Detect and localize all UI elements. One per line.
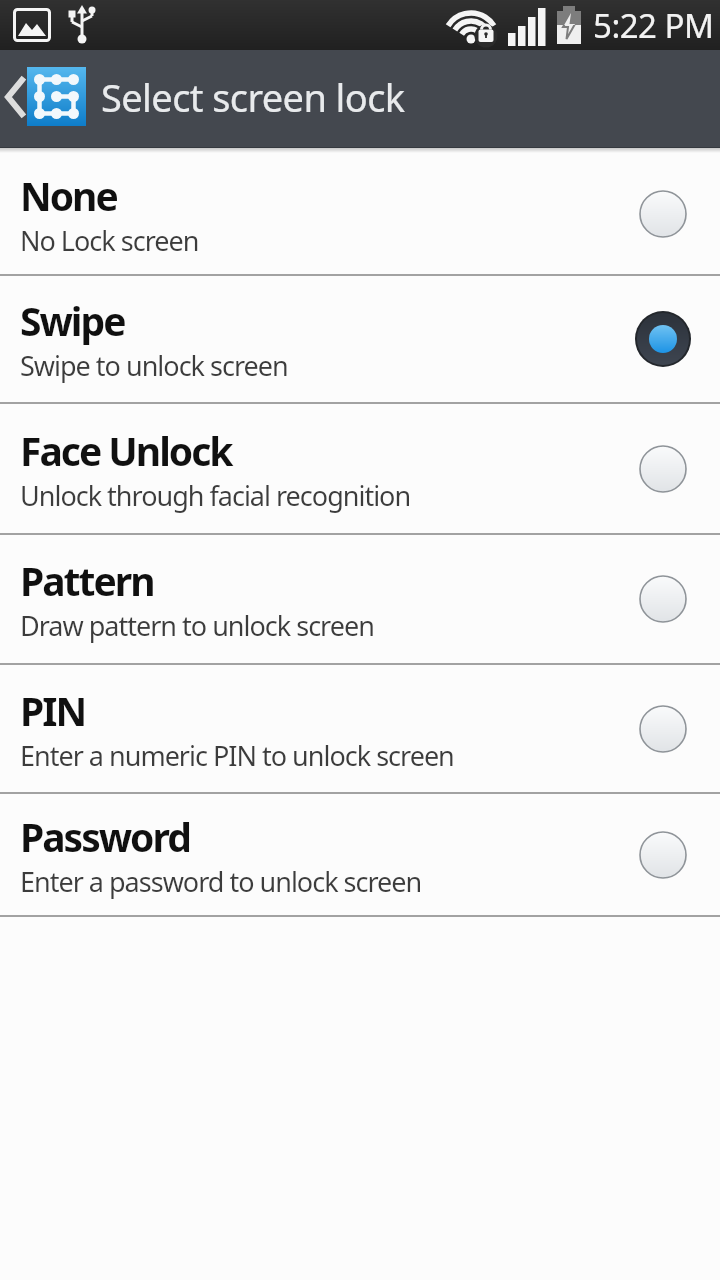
staticText: Swipe to unlock screen: [20, 347, 288, 384]
staticText: Face Unlock: [20, 424, 232, 477]
staticText: Draw pattern to unlock screen: [20, 607, 374, 644]
staticText: Swipe: [20, 294, 125, 347]
staticText: PIN: [20, 684, 86, 737]
staticText: Password: [20, 810, 190, 863]
button[interactable]: [5, 77, 26, 117]
button[interactable]: PIN: [0, 665, 720, 792]
button[interactable]: Password: [0, 794, 720, 915]
staticText: Enter a password to unlock screen: [20, 863, 422, 900]
staticText: 5:22 PM: [593, 3, 714, 48]
button[interactable]: Face Unlock: [0, 404, 720, 533]
staticText: Select screen lock: [101, 71, 405, 123]
staticText: None: [20, 169, 117, 222]
button[interactable]: None: [0, 153, 720, 274]
staticText: Enter a numeric PIN to unlock screen: [20, 737, 454, 774]
button[interactable]: Swipe: [0, 276, 720, 402]
button[interactable]: Pattern: [0, 535, 720, 663]
staticText: No Lock screen: [20, 222, 199, 259]
staticText: Pattern: [20, 554, 154, 607]
staticText: Unlock through facial recognition: [20, 477, 411, 514]
